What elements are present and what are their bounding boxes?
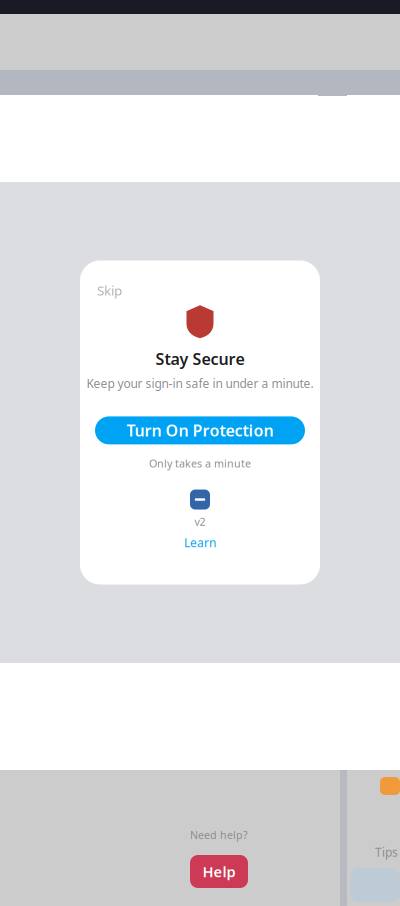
staticText: Skip	[97, 281, 122, 299]
button[interactable]: Learn	[184, 535, 216, 551]
staticText: Only takes a minute	[149, 456, 251, 471]
staticText: Help	[202, 862, 235, 881]
staticText: Tips	[375, 844, 398, 860]
staticText: Turn On Protection	[126, 420, 273, 441]
staticText: Stay Secure	[155, 348, 244, 369]
button[interactable]: Skip	[97, 281, 122, 299]
staticText: v2	[194, 515, 205, 529]
staticText: Need help?	[190, 828, 248, 842]
staticText: Keep your sign-in safe in under a minute…	[86, 375, 313, 391]
button[interactable]: Turn On Protection	[95, 416, 305, 444]
staticText: Learn	[184, 535, 216, 551]
button[interactable]: Help	[190, 855, 248, 888]
